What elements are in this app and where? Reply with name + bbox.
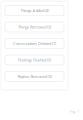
staticText: Things Added (4) [20, 8, 48, 13]
staticText: Things Removed (2) [18, 24, 51, 30]
button[interactable]: Replies Removed (3) [5, 71, 64, 81]
button[interactable]: Things Removed (2) [5, 22, 64, 32]
button[interactable]: Things Added (4) [5, 5, 64, 15]
staticText: Fig. 1 [70, 109, 79, 114]
button[interactable]: Communities Deleted (1) [5, 38, 64, 48]
staticText: Postings Flushed (5) [18, 57, 51, 63]
button[interactable]: Postings Flushed (5) [5, 55, 64, 65]
staticText: Communities Deleted (1) [13, 41, 56, 46]
staticText: Replies Removed (3) [17, 74, 51, 79]
